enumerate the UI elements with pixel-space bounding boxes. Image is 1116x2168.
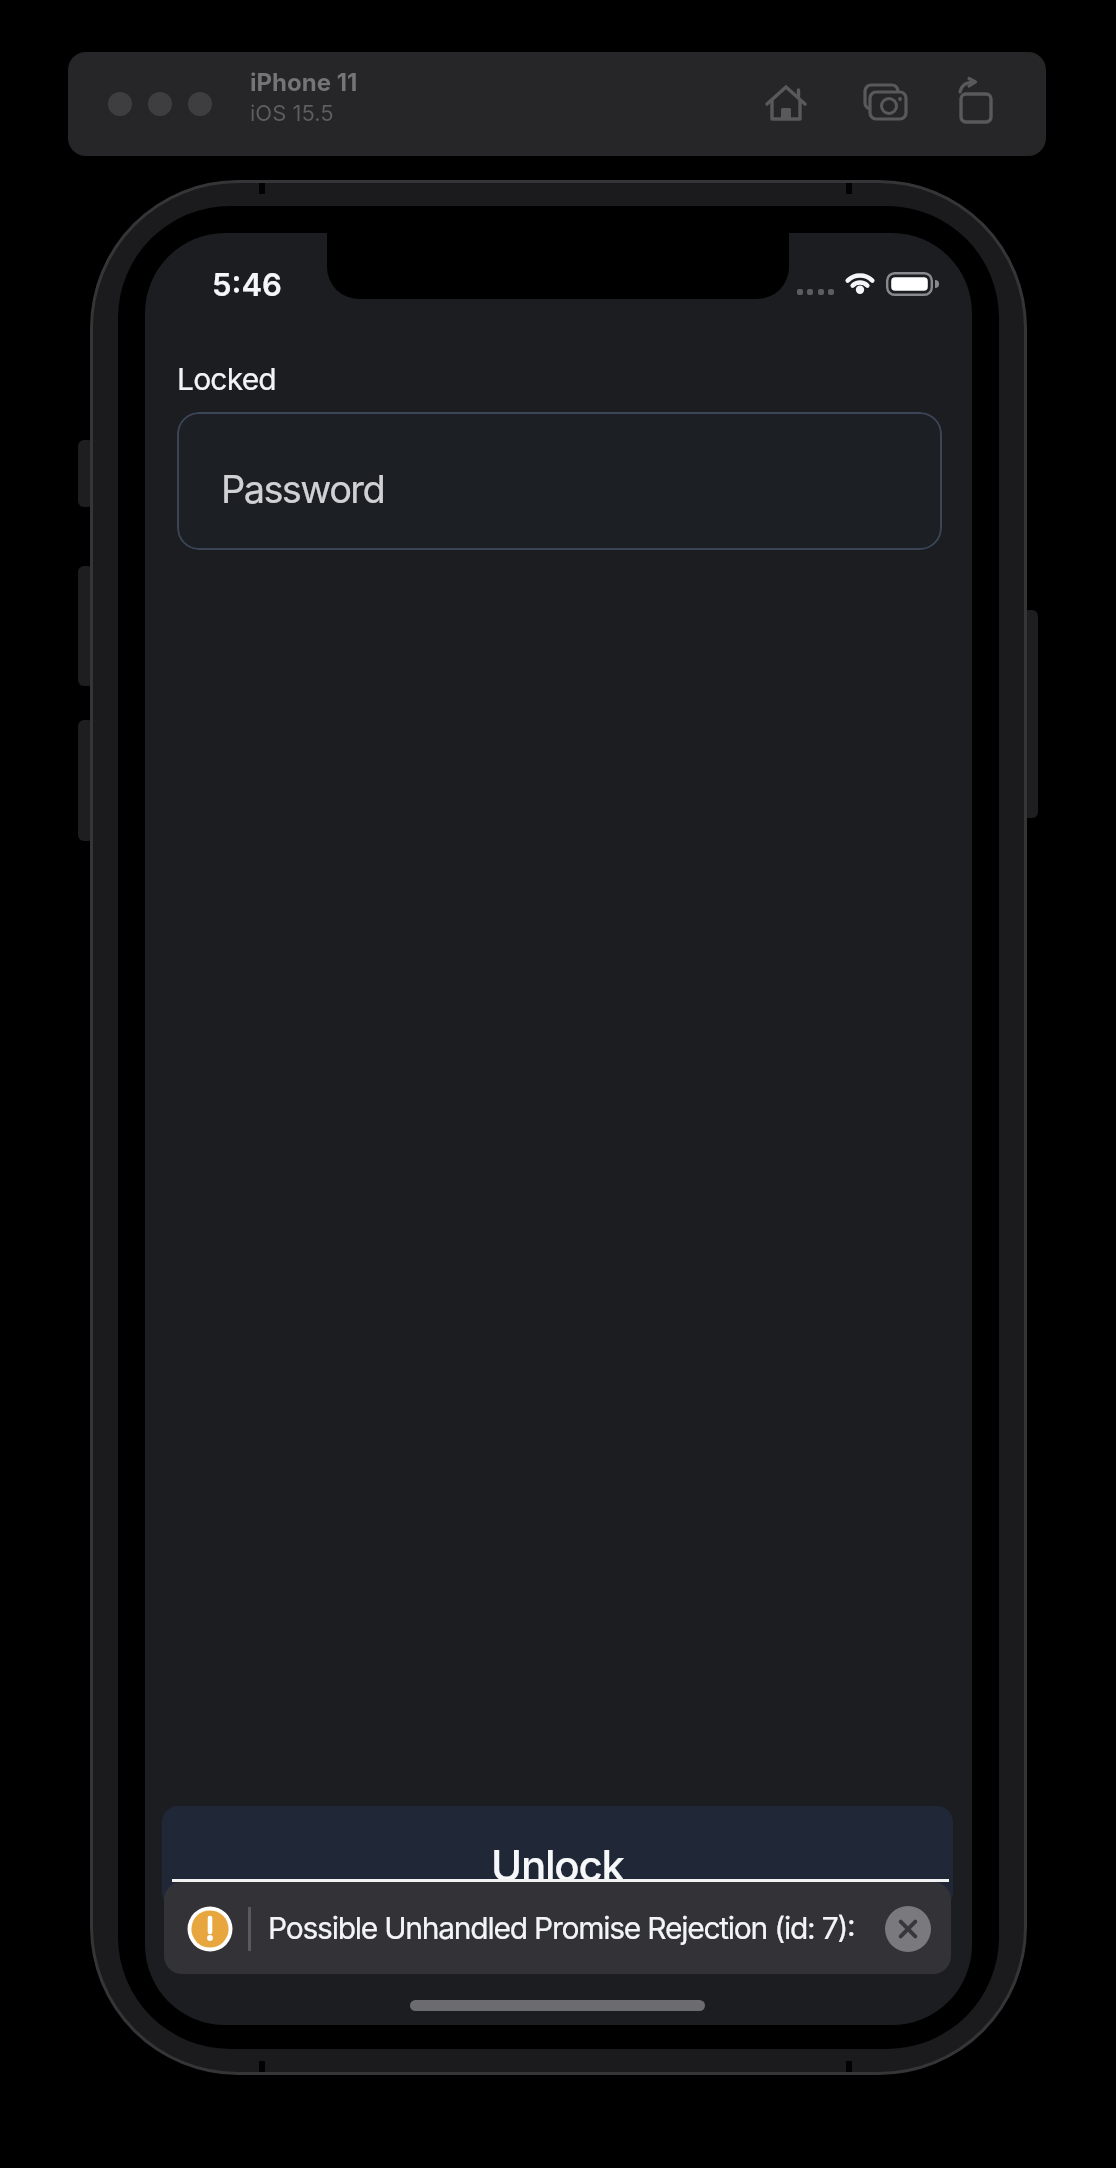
button[interactable]: Password <box>177 412 942 550</box>
staticText: iOS 15.5 <box>250 100 334 127</box>
staticText: 5:46 <box>212 266 282 304</box>
staticText: Password <box>221 466 385 512</box>
button[interactable] <box>885 1906 931 1952</box>
staticText: Possible Unhandled Promise Rejection (id… <box>268 1910 855 1946</box>
staticText: iPhone 11 <box>250 68 358 97</box>
staticText: Unlock <box>491 1840 624 1891</box>
button[interactable] <box>108 92 132 116</box>
button[interactable] <box>763 80 809 126</box>
staticText: Locked <box>177 361 276 397</box>
button[interactable] <box>188 92 212 116</box>
button[interactable] <box>148 92 172 116</box>
button[interactable]: Possible Unhandled Promise Rejection (id… <box>164 1882 951 1974</box>
button[interactable] <box>952 78 1000 128</box>
button[interactable]: Unlock <box>162 1806 953 1908</box>
button[interactable] <box>860 80 910 126</box>
